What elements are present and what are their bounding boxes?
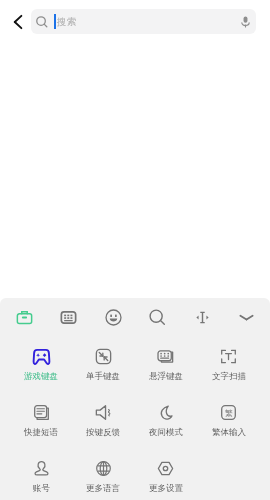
staticText: 按键反馈 bbox=[86, 427, 120, 438]
button[interactable]: Toolbox bbox=[9, 302, 39, 332]
button[interactable]: Keyboard bbox=[53, 302, 83, 332]
button[interactable]: Move cursor bbox=[187, 302, 217, 332]
staticText: 更多设置 bbox=[149, 483, 183, 494]
button[interactable]: 更多语言 bbox=[72, 448, 134, 500]
staticText: 账号 bbox=[33, 483, 50, 494]
staticText: 游戏键盘 bbox=[24, 371, 58, 382]
staticText: 更多语言 bbox=[86, 483, 120, 494]
button[interactable]: 繁 bbox=[197, 392, 260, 448]
staticText: 快捷短语 bbox=[24, 427, 58, 438]
button[interactable]: Back bbox=[5, 9, 30, 34]
staticText: 夜间模式 bbox=[149, 427, 183, 438]
staticText: 搜索 bbox=[57, 16, 78, 28]
staticText: 繁体输入 bbox=[212, 427, 246, 438]
staticText: 繁 bbox=[225, 408, 233, 418]
button[interactable]: 搜索 bbox=[31, 9, 256, 34]
button[interactable]: 快捷短语 bbox=[10, 392, 72, 448]
staticText: 文字扫描 bbox=[212, 371, 246, 382]
button[interactable]: 悬浮键盘 bbox=[134, 336, 197, 392]
button[interactable]: 文字扫描 bbox=[197, 336, 260, 392]
button[interactable]: 游戏键盘 bbox=[10, 336, 72, 392]
button[interactable]: 按键反馈 bbox=[72, 392, 134, 448]
staticText: 单手键盘 bbox=[86, 371, 120, 382]
button[interactable]: Search bbox=[142, 302, 172, 332]
staticText: 悬浮键盘 bbox=[149, 371, 183, 382]
button[interactable]: 账号 bbox=[10, 448, 72, 500]
button[interactable]: Emoji bbox=[98, 302, 128, 332]
button[interactable]: Collapse bbox=[231, 302, 261, 332]
button[interactable]: 单手键盘 bbox=[72, 336, 134, 392]
button[interactable]: 更多设置 bbox=[134, 448, 197, 500]
button[interactable]: 夜间模式 bbox=[134, 392, 197, 448]
